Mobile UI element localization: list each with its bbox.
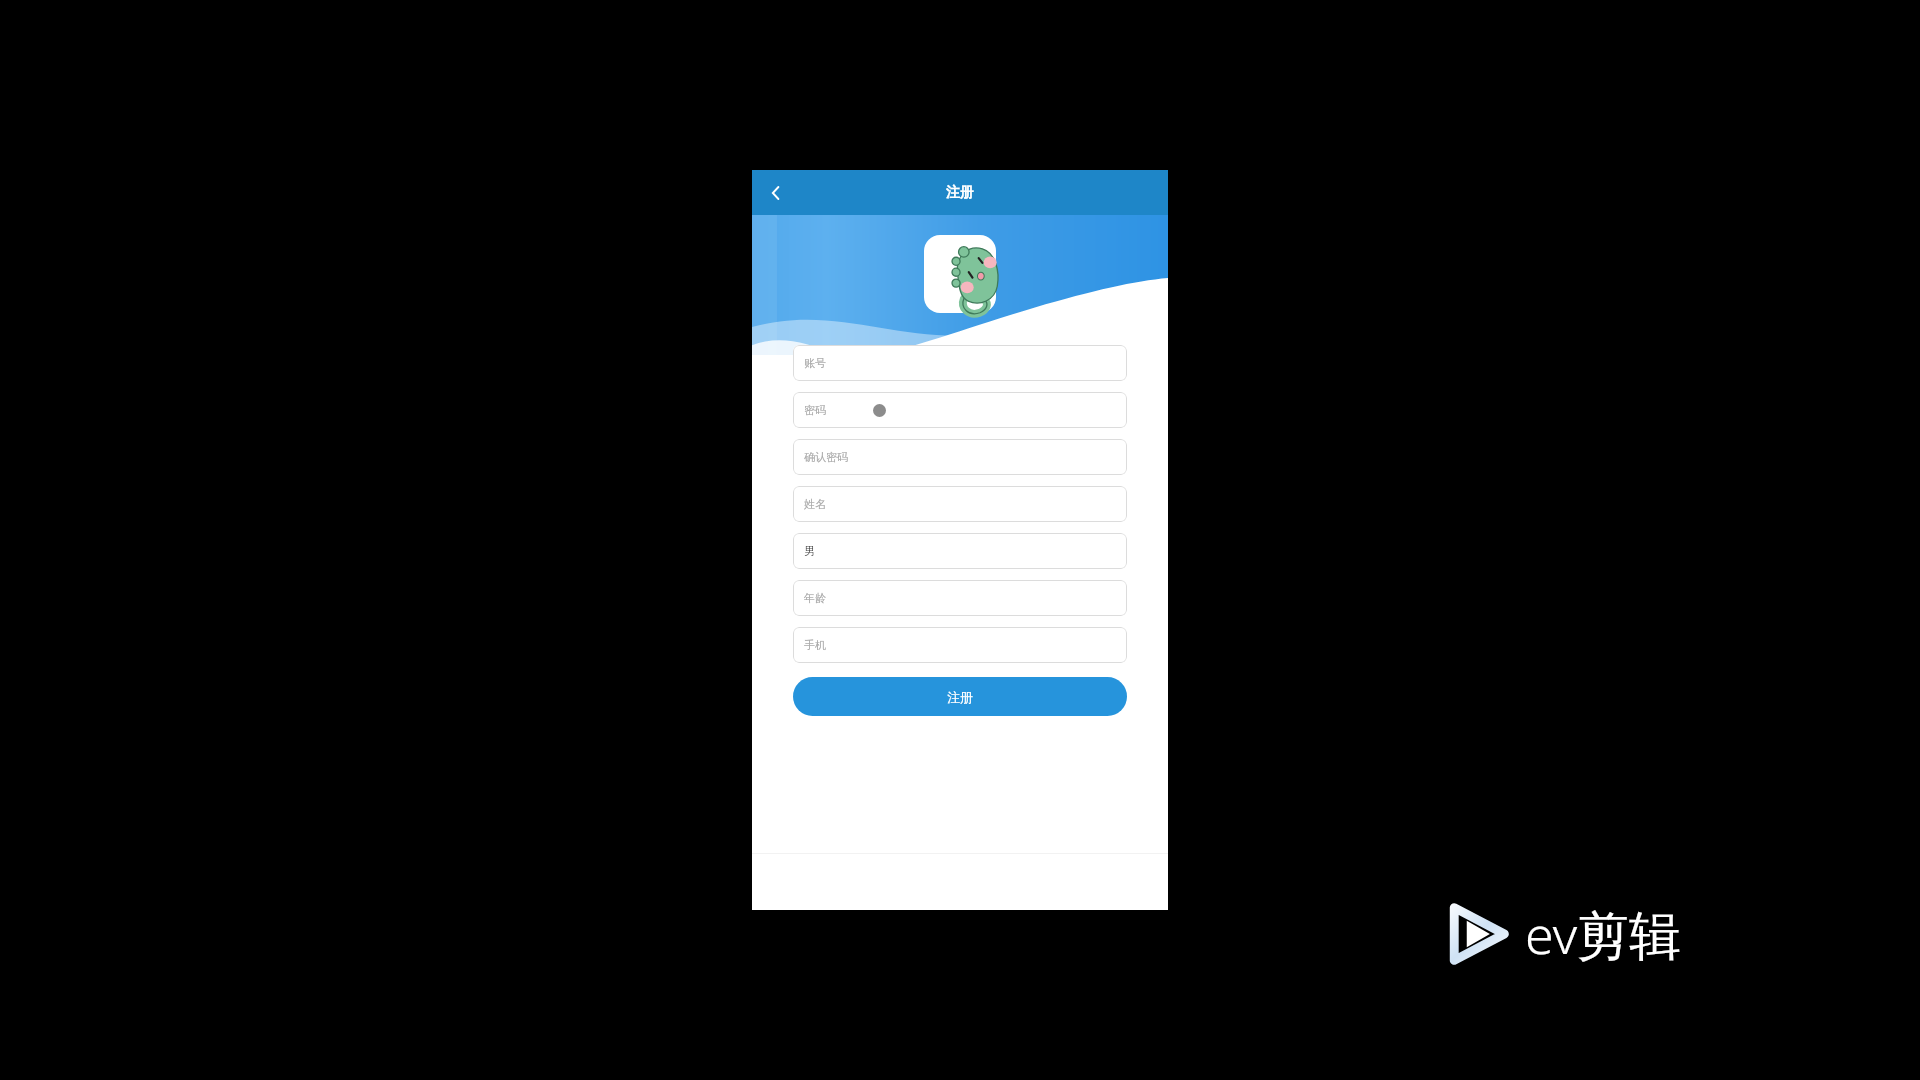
staticText: 确认密码 bbox=[804, 450, 848, 464]
staticText: 账号 bbox=[804, 356, 826, 370]
staticText: 密码 bbox=[804, 403, 826, 417]
button[interactable]: 账号 bbox=[793, 345, 1127, 381]
button[interactable]: 姓名 bbox=[793, 486, 1127, 522]
button[interactable]: 男 bbox=[793, 533, 1127, 569]
button[interactable]: 年龄 bbox=[793, 580, 1127, 616]
staticText: 手机 bbox=[804, 638, 826, 652]
button[interactable]: Back bbox=[758, 175, 794, 211]
staticText: 姓名 bbox=[804, 497, 826, 511]
button[interactable]: Avatar bbox=[924, 235, 996, 313]
staticText: 男 bbox=[804, 544, 815, 558]
staticText: 注册 bbox=[946, 184, 974, 202]
button[interactable]: 确认密码 bbox=[793, 439, 1127, 475]
staticText: 注册 bbox=[947, 689, 973, 705]
button[interactable]: 密码 bbox=[793, 392, 1127, 428]
button[interactable]: 手机 bbox=[793, 627, 1127, 663]
button[interactable]: 注册 bbox=[793, 677, 1127, 716]
staticText: ev剪辑 bbox=[1525, 898, 1682, 969]
staticText: 年龄 bbox=[804, 591, 826, 605]
